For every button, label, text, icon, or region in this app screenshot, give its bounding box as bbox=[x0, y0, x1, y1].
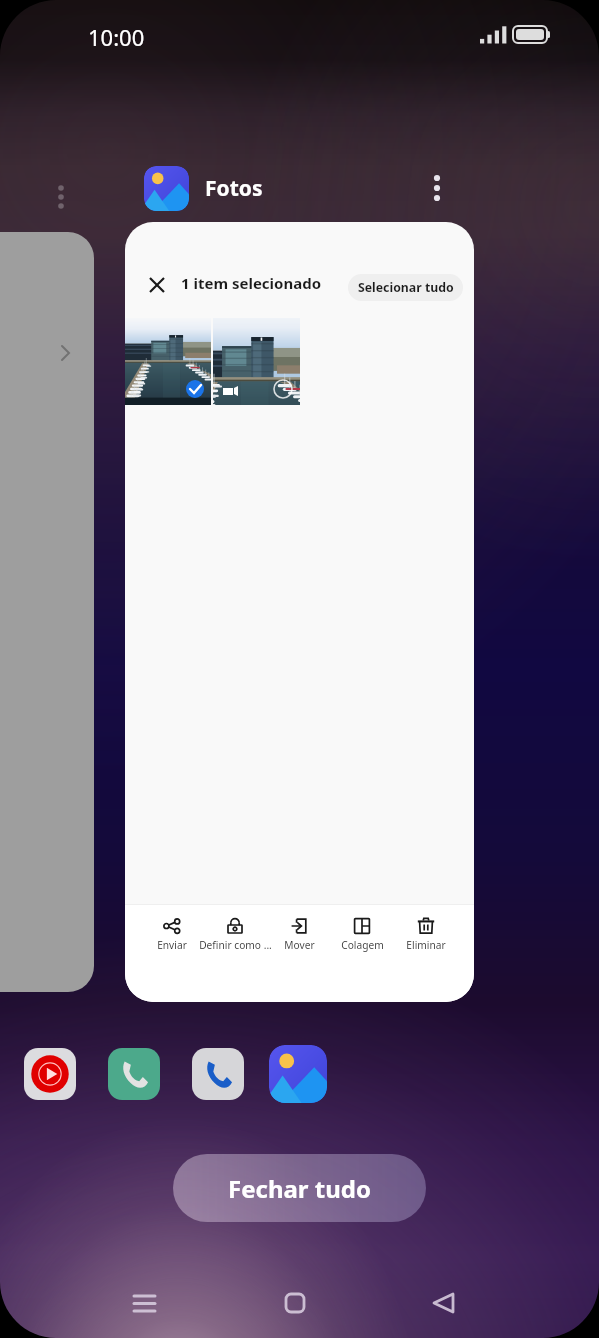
button[interactable]: More options bbox=[52, 182, 70, 212]
button[interactable]: Fotos app icon bbox=[144, 166, 189, 211]
button[interactable] bbox=[395, 908, 457, 960]
button[interactable]: Selecionar tudo bbox=[348, 274, 463, 301]
button[interactable] bbox=[141, 908, 203, 960]
staticText: Definir como ... bbox=[199, 938, 272, 952]
staticText: Selecionar tudo bbox=[358, 279, 454, 296]
staticText: 1 item selecionado bbox=[181, 273, 322, 293]
staticText: Mover bbox=[284, 938, 315, 952]
button[interactable]: Close selection bbox=[138, 266, 175, 303]
button[interactable]: Phone bbox=[108, 1048, 160, 1100]
staticText: Fechar tudo bbox=[228, 1172, 372, 1205]
button[interactable]: Recent apps bbox=[134, 1293, 155, 1314]
button[interactable] bbox=[213, 318, 300, 405]
staticText: 10:00 bbox=[88, 22, 145, 52]
button[interactable]: YouTube Music bbox=[24, 1048, 76, 1100]
button[interactable]: Fechar tudo bbox=[173, 1154, 426, 1222]
button[interactable]: Back bbox=[433, 1293, 453, 1313]
button[interactable] bbox=[331, 908, 393, 960]
button[interactable]: Contacts bbox=[192, 1048, 244, 1100]
button[interactable] bbox=[204, 908, 266, 960]
button[interactable]: Gallery bbox=[269, 1045, 327, 1103]
staticText: Enviar bbox=[157, 938, 187, 952]
staticText: Fotos bbox=[205, 174, 263, 203]
button[interactable] bbox=[0, 232, 94, 992]
staticText: Colagem bbox=[341, 938, 384, 952]
button[interactable]: Home bbox=[285, 1293, 305, 1313]
button[interactable] bbox=[125, 318, 211, 405]
button[interactable] bbox=[268, 908, 330, 960]
button[interactable]: More options bbox=[425, 172, 449, 204]
staticText: Eliminar bbox=[406, 938, 446, 952]
